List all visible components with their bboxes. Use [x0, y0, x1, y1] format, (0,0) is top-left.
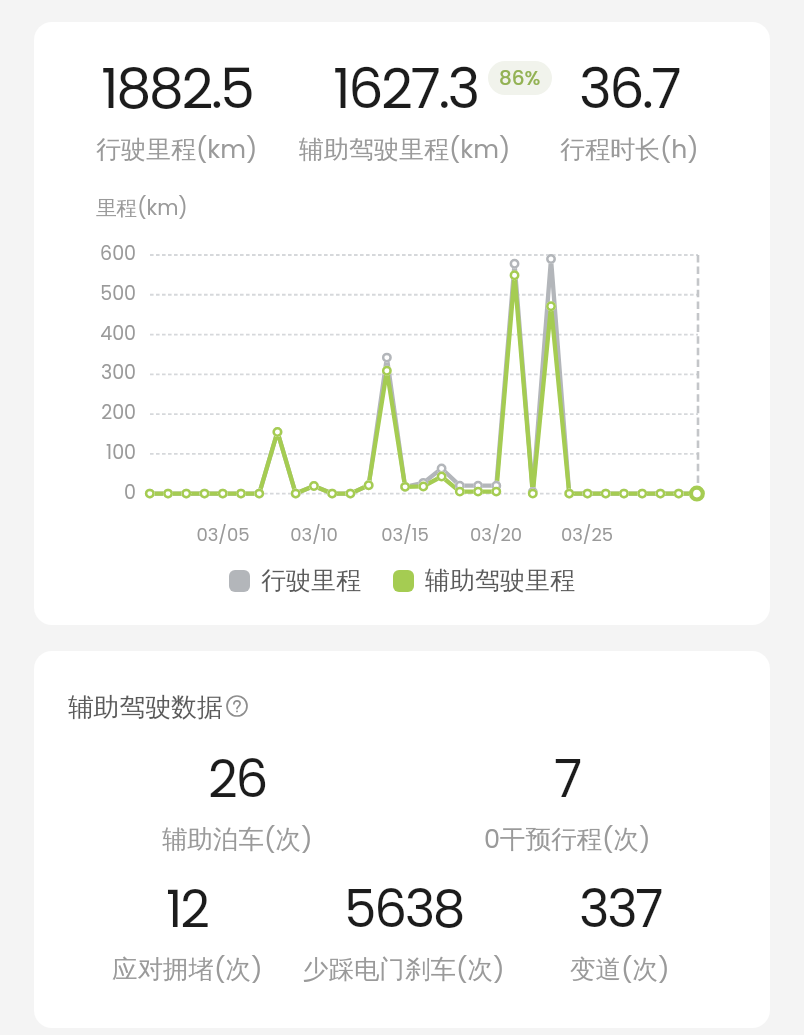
staticText: 100 — [34, 439, 136, 466]
staticText: 03/25 — [547, 522, 627, 547]
staticText: 5638 — [344, 873, 464, 945]
button[interactable]: 辅助驾驶里程 — [393, 565, 575, 596]
button[interactable]: 行驶里程 — [229, 565, 361, 596]
staticText: 12 — [166, 873, 208, 945]
staticText: 辅助泊车(次) — [162, 821, 313, 857]
staticText: 400 — [34, 320, 136, 347]
staticText: 辅助驾驶里程(km) — [299, 132, 511, 167]
staticText: 86% — [499, 64, 541, 92]
staticText: 03/05 — [183, 522, 263, 547]
staticText: 行程时长(h) — [560, 132, 699, 167]
staticText: 03/20 — [456, 522, 536, 547]
staticText: 变道(次) — [570, 951, 670, 987]
staticText: 1627.3 — [333, 50, 478, 128]
staticText: 辅助驾驶里程 — [425, 565, 575, 596]
staticText: 500 — [34, 280, 136, 307]
staticText: 600 — [34, 240, 136, 267]
button[interactable]: Help, assisted driving data — [226, 695, 248, 717]
staticText: 里程(km) — [96, 193, 188, 222]
staticText: 应对拥堵(次) — [112, 951, 263, 987]
staticText: 337 — [579, 873, 662, 945]
staticText: 行驶里程 — [261, 565, 361, 596]
staticText: 辅助驾驶数据 — [68, 691, 223, 724]
staticText: 1882.5 — [101, 50, 253, 128]
staticText: 行驶里程(km) — [96, 132, 258, 167]
staticText: 36.7 — [579, 50, 680, 128]
staticText: 0 — [34, 479, 136, 506]
staticText: 03/10 — [274, 522, 354, 547]
staticText: 03/15 — [365, 522, 445, 547]
staticText: 0干预行程(次) — [484, 821, 651, 857]
staticText: 300 — [34, 359, 136, 386]
staticText: 200 — [34, 399, 136, 426]
staticText: 7 — [554, 743, 580, 815]
staticText: 26 — [208, 743, 266, 815]
staticText: 少踩电门刹车(次) — [303, 951, 505, 987]
